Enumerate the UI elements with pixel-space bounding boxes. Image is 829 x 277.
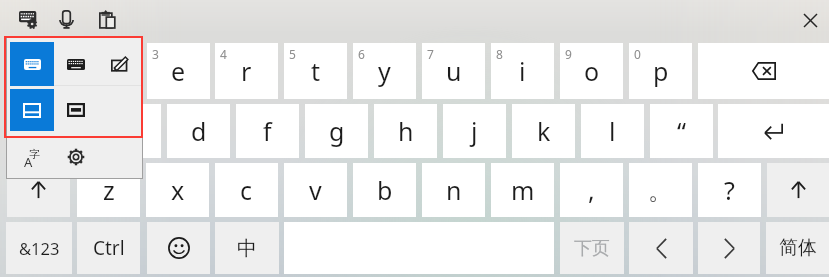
button[interactable]: ? (698, 163, 761, 217)
staticText: x (171, 173, 185, 207)
button[interactable]: Next page (698, 222, 760, 274)
staticText: 下页 (574, 237, 610, 260)
staticText: t (311, 54, 321, 88)
button[interactable]: Shift (7, 163, 70, 217)
button[interactable]: 7 (422, 43, 485, 99)
button[interactable]: Backspace (698, 43, 829, 99)
button[interactable]: k (512, 104, 575, 158)
button[interactable]: 3 (147, 43, 210, 99)
staticText: p (653, 54, 669, 88)
staticText: Ctrl (93, 235, 125, 261)
staticText: v (309, 173, 322, 207)
button[interactable]: g (305, 104, 368, 158)
button[interactable]: j (443, 104, 506, 158)
staticText: &123 (19, 237, 60, 259)
button[interactable]: z (77, 163, 140, 217)
button[interactable]: Settings (54, 135, 98, 178)
button[interactable]: Clipboard (92, 4, 121, 35)
button[interactable]: Compact keyboard (54, 42, 98, 86)
button[interactable]: 6 (353, 43, 416, 99)
staticText: e (171, 54, 186, 88)
staticText: 。 (648, 175, 673, 206)
staticText: 3 (152, 46, 159, 62)
button[interactable]: Ctrl (77, 222, 140, 274)
staticText: 中 (237, 236, 257, 261)
button[interactable]: 4 (215, 43, 278, 99)
button[interactable]: Enter (718, 104, 829, 158)
button[interactable]: , (560, 163, 623, 217)
staticText: 字 (29, 147, 40, 161)
staticText: 7 (427, 46, 434, 62)
button[interactable]: 5 (284, 43, 347, 99)
staticText: l (609, 114, 616, 148)
button[interactable]: d (167, 104, 230, 158)
button[interactable]: c (215, 163, 278, 217)
staticText: 9 (565, 46, 572, 62)
button[interactable]: b (353, 163, 416, 217)
staticText: 8 (496, 46, 503, 62)
button[interactable]: &123 (6, 222, 72, 274)
button[interactable]: n (422, 163, 485, 217)
staticText: 6 (358, 46, 365, 62)
staticText: r (241, 54, 252, 88)
button[interactable]: h (374, 104, 437, 158)
button[interactable]: m (491, 163, 554, 217)
staticText: 5 (289, 46, 296, 62)
button[interactable]: 9 (560, 43, 623, 99)
button[interactable]: Split keyboard (10, 89, 54, 131)
staticText: h (398, 114, 414, 148)
button[interactable]: v (284, 163, 347, 217)
button[interactable]: Full keyboard (10, 42, 54, 86)
button[interactable]: s (98, 104, 161, 158)
staticText: d (191, 114, 207, 148)
staticText: 4 (220, 46, 227, 62)
button[interactable]: Keyboard settings (13, 4, 42, 35)
button[interactable]: Emoji (147, 222, 210, 274)
staticText: , (588, 173, 595, 207)
staticText: c (240, 173, 253, 207)
staticText: 0 (634, 46, 641, 62)
staticText: o (584, 54, 600, 88)
button[interactable]: l (581, 104, 644, 158)
button[interactable]: “ (650, 104, 713, 158)
button[interactable]: Shift (767, 163, 829, 217)
staticText: ? (724, 173, 735, 207)
staticText: n (446, 173, 462, 207)
button[interactable]: Previous page (629, 222, 693, 274)
staticText: y (378, 54, 391, 88)
staticText: i (519, 54, 526, 88)
button[interactable]: 0 (629, 43, 692, 99)
staticText: s (124, 114, 136, 148)
button[interactable]: Handwriting (98, 42, 142, 86)
button[interactable]: Language (10, 135, 54, 178)
button[interactable]: 中 (215, 222, 279, 274)
button[interactable]: 简体 (766, 222, 829, 274)
staticText: m (511, 173, 535, 207)
staticText: u (446, 54, 462, 88)
button[interactable]: 。 (629, 163, 692, 217)
button[interactable]: Floating keyboard (54, 89, 98, 131)
staticText: b (377, 173, 393, 207)
staticText: z (103, 173, 115, 207)
staticText: f (263, 114, 272, 148)
staticText: k (537, 114, 551, 148)
staticText: A (24, 153, 33, 171)
staticText: g (329, 114, 345, 148)
staticText: j (471, 114, 478, 148)
staticText: 简体 (779, 236, 817, 260)
button[interactable]: x (146, 163, 209, 217)
button[interactable]: 下页 (560, 222, 624, 274)
button[interactable]: f (236, 104, 299, 158)
button[interactable]: Voice input (53, 4, 80, 35)
staticText: “ (677, 114, 686, 148)
button[interactable]: 8 (491, 43, 554, 99)
button[interactable]: Close (796, 6, 824, 34)
